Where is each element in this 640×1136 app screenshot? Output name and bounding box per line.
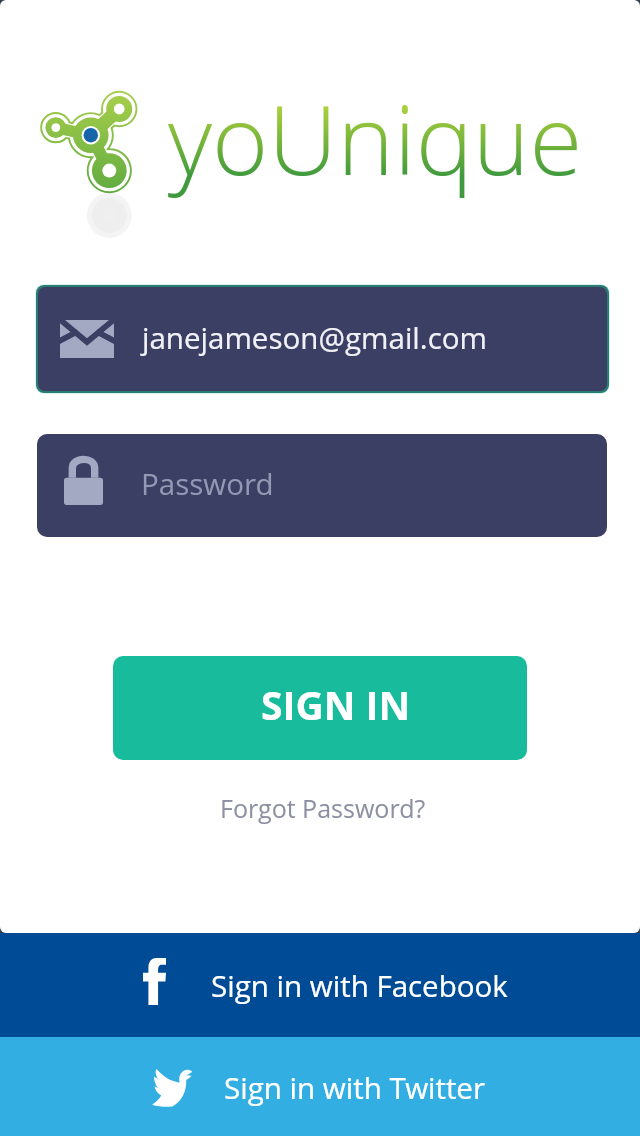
- button[interactable]: Forgot Password?: [3, 784, 640, 832]
- staticText: yoUnique: [168, 72, 583, 203]
- staticText: SIGN IN: [261, 678, 411, 731]
- other: Twitter: [151, 1069, 192, 1107]
- other: Facebook: [143, 958, 166, 1005]
- staticText: Sign in with Twitter: [224, 1067, 485, 1107]
- other: Password: [64, 453, 103, 505]
- button[interactable]: SIGN IN: [113, 656, 527, 760]
- button[interactable]: Facebook: [0, 933, 640, 1037]
- staticText: janejameson@gmail.com: [142, 317, 487, 357]
- button[interactable]: Twitter: [0, 1037, 640, 1136]
- staticText: Forgot Password?: [220, 791, 426, 825]
- button[interactable]: Email: [38, 287, 607, 391]
- button[interactable]: Password: [37, 434, 607, 537]
- other: Email: [60, 320, 114, 358]
- staticText: Password: [141, 463, 274, 503]
- staticText: Sign in with Facebook: [211, 965, 508, 1005]
